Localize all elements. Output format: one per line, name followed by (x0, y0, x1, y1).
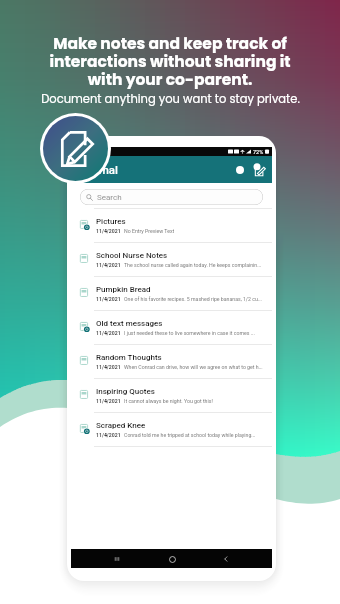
button[interactable]: Journal app icon (43, 116, 108, 181)
button[interactable]: Back (217, 550, 235, 568)
staticText: 11/4/2021 (96, 296, 121, 302)
staticText: Pumpkin Bread (96, 285, 151, 294)
button[interactable]: Random Thoughts (71, 344, 272, 378)
button[interactable]: Account (231, 161, 249, 179)
staticText: Conrad told me he tripped at school toda… (124, 432, 256, 438)
staticText: 11/4/2021 (96, 398, 121, 404)
staticText: Journal (79, 163, 118, 176)
button[interactable]: Inspiring Quotes (71, 378, 272, 412)
button[interactable]: Old text messages (71, 310, 272, 344)
staticText: Search (97, 193, 122, 202)
staticText: One of his favorite recipes. 5 mashed ri… (124, 296, 262, 302)
staticText: No Entry Preview Text (124, 228, 175, 234)
staticText: 11/4/2021 (96, 262, 121, 268)
staticText: Scraped Knee (96, 421, 146, 430)
button[interactable]: Home (163, 550, 181, 568)
staticText: I just needed these to live somewhere in… (124, 330, 255, 336)
staticText: Pictures (96, 217, 126, 226)
staticText: Make notes and keep track of interaction… (49, 33, 291, 90)
button[interactable]: Pictures (71, 208, 272, 242)
staticText: 11/4/2021 (96, 330, 121, 336)
button[interactable]: Recents (108, 550, 126, 568)
staticText: 11/4/2021 (96, 228, 121, 234)
button[interactable]: Pumpkin Bread (71, 276, 272, 310)
staticText: 11/4/2021 (96, 432, 121, 438)
button[interactable]: Scraped Knee (71, 412, 272, 446)
button[interactable]: Search (80, 189, 263, 205)
staticText: Document anything you want to stay priva… (41, 91, 300, 107)
staticText: Old text messages (96, 319, 163, 328)
staticText: It cannot always be night. You got this! (124, 398, 213, 404)
staticText: 72% (253, 149, 264, 155)
staticText: When Conrad can drive, how will we agree… (124, 364, 263, 370)
staticText: School Nurse Notes (96, 251, 168, 260)
button[interactable]: New entry (250, 161, 268, 179)
button[interactable]: School Nurse Notes (71, 242, 272, 276)
staticText: Inspiring Quotes (96, 387, 155, 396)
staticText: Random Thoughts (96, 353, 162, 362)
staticText: 11/4/2021 (96, 364, 121, 370)
staticText: The school nurse called again today. He … (124, 262, 262, 268)
